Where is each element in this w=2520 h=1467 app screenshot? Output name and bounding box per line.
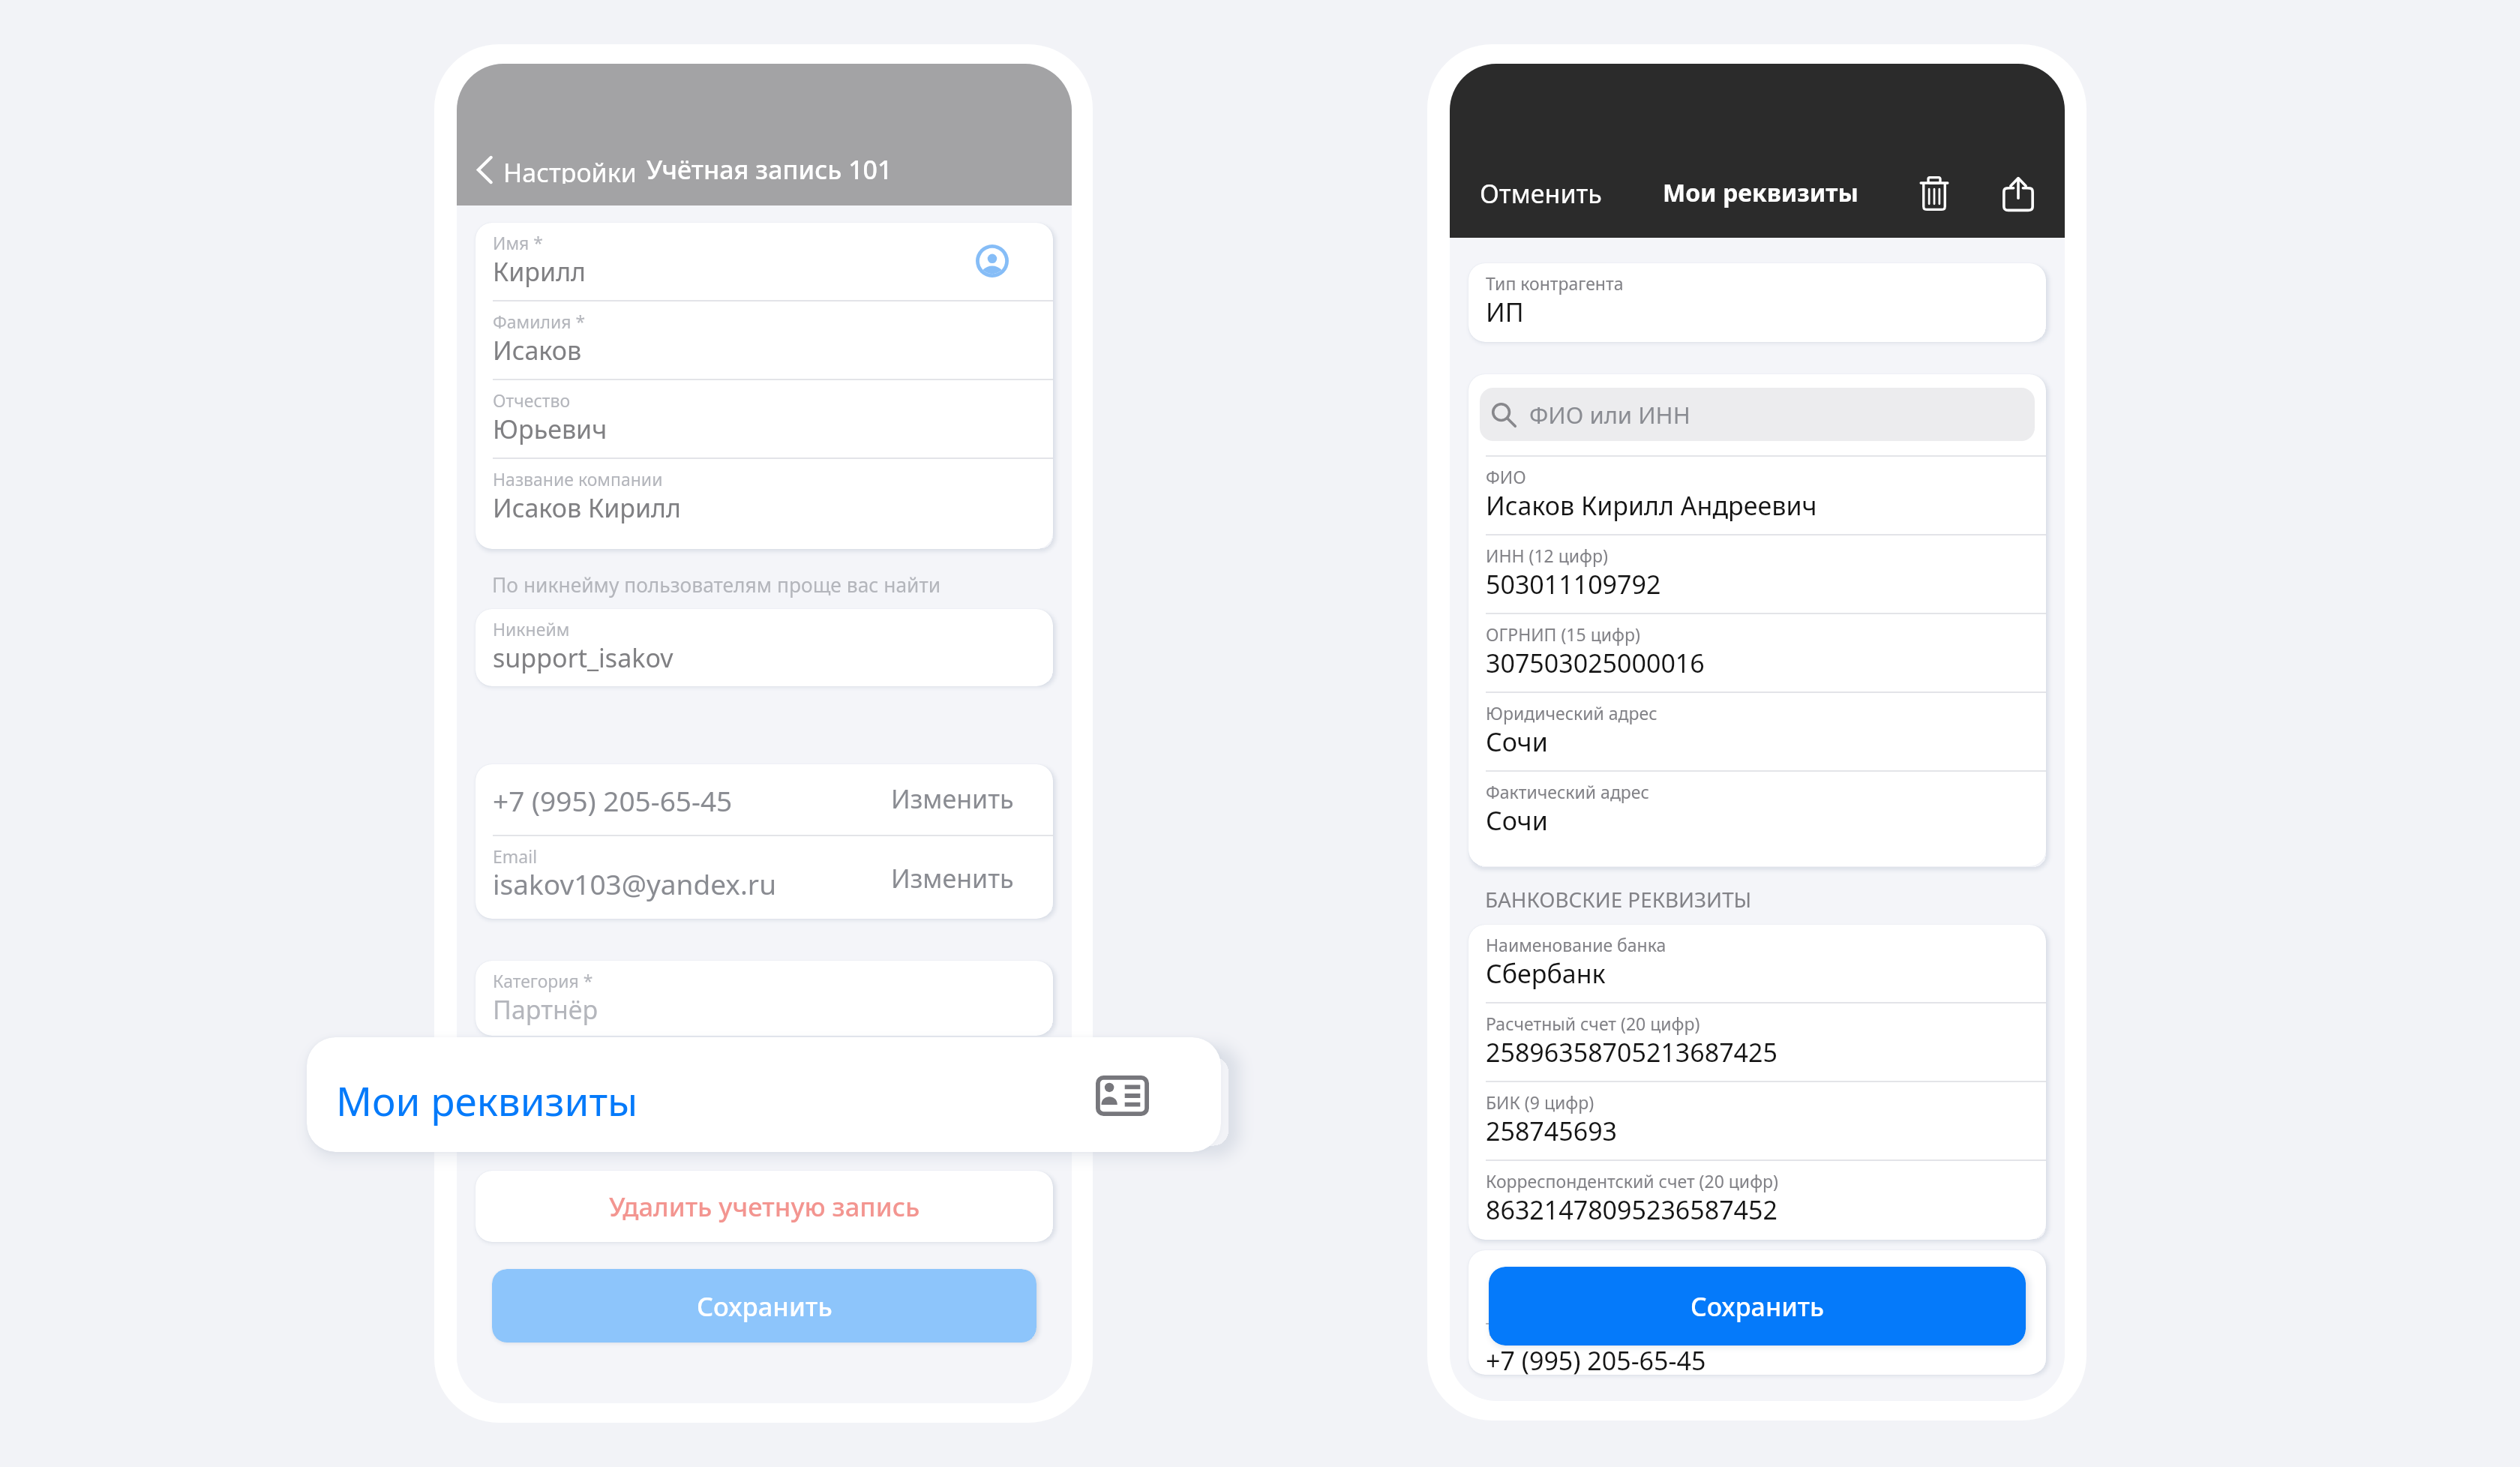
staticText: 25896358705213687425 bbox=[1486, 1035, 1777, 1069]
staticText: Тип контрагента bbox=[1486, 271, 1624, 295]
staticText: Партнёр bbox=[493, 992, 598, 1027]
staticText: Категория * bbox=[493, 969, 593, 992]
button[interactable]: Сохранить bbox=[1489, 1267, 2026, 1345]
staticText: +7 (995) 205-65-45 bbox=[1486, 1343, 1706, 1375]
staticText: БИК (9 цифр) bbox=[1486, 1090, 1594, 1114]
button[interactable]: Share bbox=[1991, 166, 2045, 220]
staticText: 503011109792 bbox=[1486, 567, 1661, 601]
staticText: support_isakov bbox=[493, 640, 673, 675]
staticText: Удалить учетную запись bbox=[609, 1189, 920, 1224]
staticText: 258745693 bbox=[1486, 1114, 1618, 1148]
button[interactable]: ФИО или ИНН bbox=[1480, 388, 2035, 441]
button[interactable]: Настройки bbox=[469, 149, 644, 190]
button[interactable]: Сохранить bbox=[492, 1269, 1036, 1342]
staticText: Корреспондентский счет (20 цифр) bbox=[1486, 1169, 1778, 1192]
staticText: Название компании bbox=[493, 467, 663, 490]
staticText: Сочи bbox=[1486, 803, 1548, 838]
staticText: 307503025000016 bbox=[1486, 646, 1705, 680]
staticText: ИП bbox=[1486, 295, 1524, 329]
staticText: Изменить bbox=[891, 861, 1014, 895]
button[interactable]: Мои реквизиты bbox=[307, 1037, 1221, 1152]
staticText: ОГРНИП (15 цифр) bbox=[1486, 622, 1640, 646]
staticText: По никнейму пользователям проще вас найт… bbox=[492, 571, 941, 598]
staticText: Настройки bbox=[503, 155, 637, 184]
button[interactable]: Delete bbox=[1907, 166, 1961, 220]
staticText: Сохранить bbox=[697, 1288, 832, 1324]
staticText: 86321478095236587452 bbox=[1486, 1192, 1777, 1227]
staticText: Email bbox=[493, 844, 538, 868]
staticText: Сохранить bbox=[1690, 1289, 1825, 1324]
button[interactable]: Отменить bbox=[1471, 169, 1610, 218]
staticText: Мои реквизиты bbox=[1663, 176, 1858, 209]
button[interactable]: Изменить bbox=[882, 852, 1023, 904]
staticText: Изменить bbox=[891, 781, 1014, 816]
staticText: Фактический адрес bbox=[1486, 780, 1649, 803]
button[interactable]: Изменить bbox=[882, 772, 1023, 825]
staticText: Расчетный счет (20 цифр) bbox=[1486, 1012, 1700, 1035]
staticText: Отменить bbox=[1480, 176, 1602, 211]
staticText: Наименование банка bbox=[1486, 933, 1666, 956]
staticText: Телефон bbox=[1486, 1317, 1558, 1340]
staticText: Учётная запись 101 bbox=[646, 152, 892, 187]
staticText: Юридический адрес bbox=[1486, 701, 1657, 724]
staticText: Отчество bbox=[493, 388, 571, 412]
staticText: Сбербанк bbox=[1486, 956, 1606, 991]
staticText: isakov103@yandex.ru bbox=[493, 865, 776, 902]
staticText: Исаков Кирилл Андреевич bbox=[1486, 488, 1817, 523]
staticText: Юрьевич bbox=[493, 412, 607, 446]
staticText: +7 (995) 205-65-45 bbox=[493, 781, 733, 819]
staticText: Сочи bbox=[1486, 724, 1548, 759]
staticText: Имя * bbox=[493, 231, 543, 254]
staticText: БАНКОВСКИЕ РЕКВИЗИТЫ bbox=[1485, 885, 1752, 913]
staticText: Кирилл bbox=[493, 254, 586, 289]
button[interactable]: Удалить учетную запись bbox=[475, 1171, 1053, 1242]
staticText: Исаков bbox=[493, 333, 582, 367]
button[interactable]: Profile photo bbox=[976, 244, 1009, 277]
staticText: Никнейм bbox=[493, 617, 570, 640]
staticText: Фамилия * bbox=[493, 310, 586, 333]
staticText: Исаков Кирилл bbox=[493, 490, 682, 525]
staticText: Мои реквизиты bbox=[336, 1073, 638, 1127]
staticText: ФИО bbox=[1486, 465, 1526, 488]
staticText: ИНН (12 цифр) bbox=[1486, 544, 1608, 567]
staticText: ФИО или ИНН bbox=[1529, 399, 1690, 430]
